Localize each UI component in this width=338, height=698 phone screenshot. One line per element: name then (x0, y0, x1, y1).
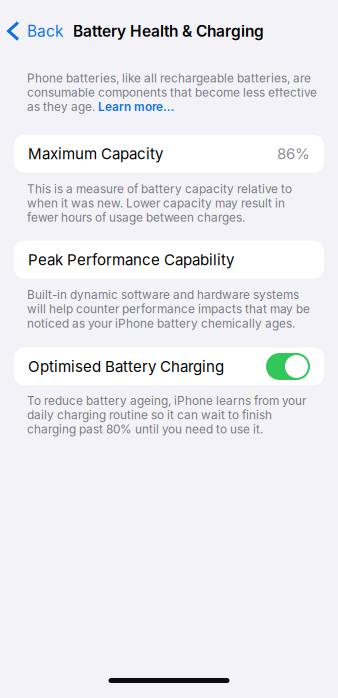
staticText: This is a measure of battery capacity re… (27, 182, 292, 225)
staticText: To reduce battery ageing, iPhone learns … (27, 393, 306, 436)
staticText: 86% (277, 145, 310, 163)
staticText: Built-in dynamic software and hardware s… (27, 288, 310, 330)
staticText: Back (27, 22, 63, 40)
button[interactable]: Optimised Battery Charging (14, 347, 324, 385)
staticText: Optimised Battery Charging (28, 357, 224, 376)
staticText: Maximum Capacity (28, 145, 163, 163)
staticText: Battery Health & Charging (73, 22, 264, 40)
button[interactable]: Back (0, 16, 63, 46)
staticText: Peak Performance Capability (28, 250, 234, 269)
button[interactable]: Maximum Capacity (14, 135, 324, 173)
button[interactable]: Peak Performance Capability (14, 241, 324, 279)
staticText: Phone batteries, like all rechargeable b… (27, 71, 317, 114)
